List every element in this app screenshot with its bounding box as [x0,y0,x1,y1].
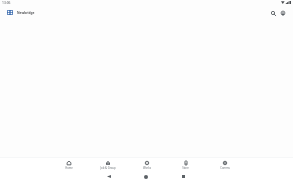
button[interactable]: Recents [175,171,191,182]
button[interactable]: Account [277,7,289,19]
button[interactable]: Back [101,171,117,182]
staticText: Store [182,166,189,170]
staticText: Newbridge [17,11,35,15]
button[interactable]: Store [166,158,205,171]
button[interactable]: Works [127,158,166,171]
button[interactable]: Search [267,7,279,19]
button[interactable]: Home [138,171,154,182]
staticText: Comms [220,166,230,170]
staticText: Home [65,166,73,170]
staticText: 13:06 [2,0,11,4]
button[interactable]: Comms [205,158,244,171]
staticText: Works [143,166,151,170]
button[interactable]: Job & Group [88,158,127,171]
button[interactable]: Home [49,158,88,171]
staticText: Job & Group [100,166,116,170]
